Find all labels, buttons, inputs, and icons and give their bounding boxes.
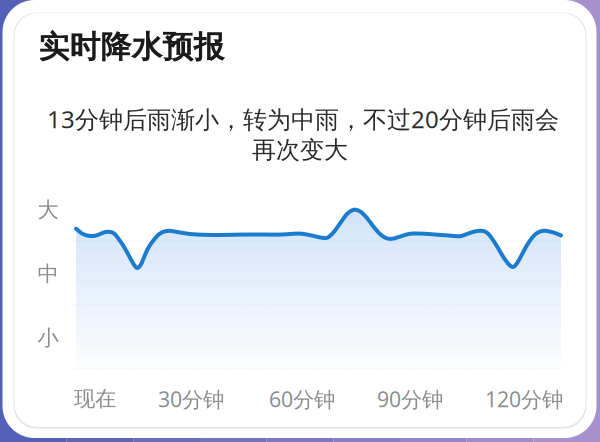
staticText: 13分钟后雨渐小，转为中雨，不过20分钟后雨会 (47, 103, 559, 135)
staticText: 90分钟 (377, 385, 443, 413)
staticText: 60分钟 (269, 385, 335, 413)
staticText: 现在 (74, 386, 116, 412)
staticText: 120分钟 (485, 385, 563, 413)
staticText: 30分钟 (158, 385, 224, 413)
staticText: 中 (37, 261, 58, 287)
staticText: 大 (37, 197, 58, 223)
staticText: 实时降水预报 (38, 28, 224, 66)
staticText: 小 (37, 325, 58, 351)
staticText: 再次变大 (252, 135, 348, 165)
